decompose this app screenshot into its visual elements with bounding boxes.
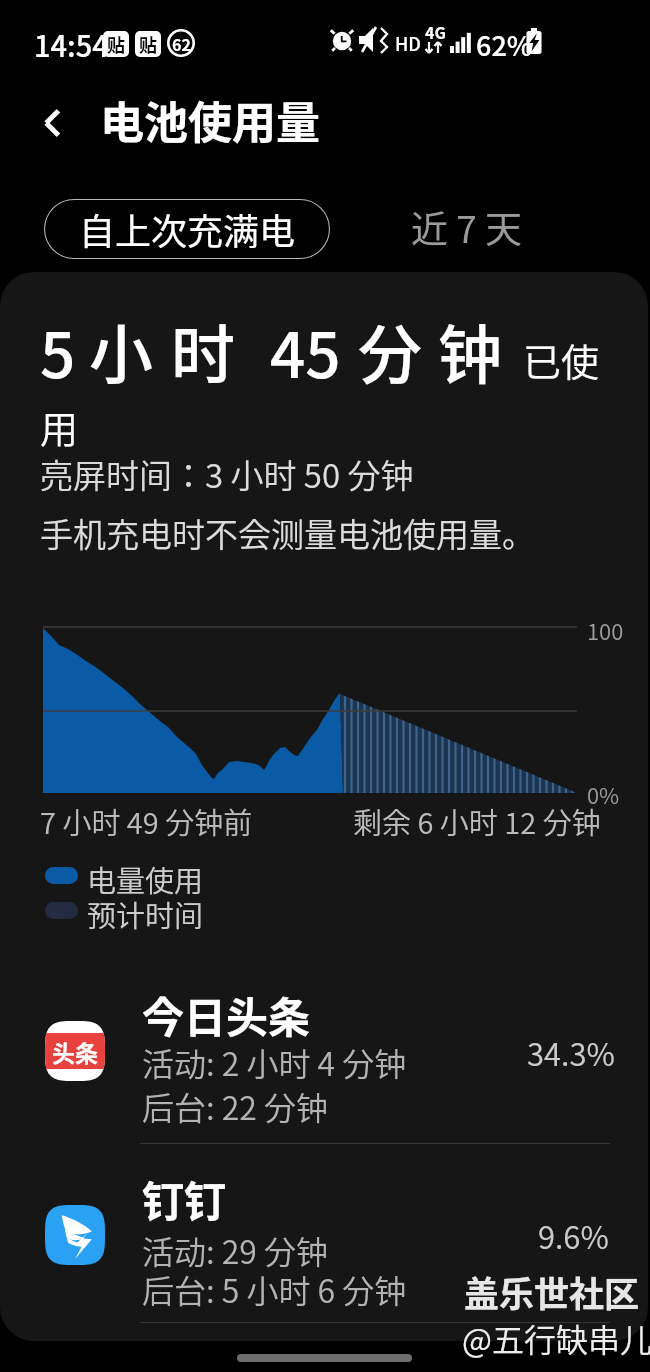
- staticText: 预计时间: [87, 893, 204, 935]
- staticText: 剩余 6 小时 12 分钟: [353, 800, 601, 842]
- staticText: 34.3%: [527, 1030, 615, 1075]
- staticText: 14:54: [34, 23, 109, 65]
- staticText: 亮屏时间：3 小时 50 分钟: [40, 450, 414, 498]
- staticText: 62%: [476, 25, 533, 64]
- staticText: 今日头条: [142, 984, 311, 1045]
- staticText: 4G: [425, 20, 446, 43]
- staticText: 贴: [107, 31, 125, 57]
- staticText: 手机充电时不会测量电池使用量。: [40, 509, 535, 557]
- staticText: 钉钉: [142, 1168, 227, 1229]
- staticText: 9.6%: [538, 1213, 609, 1258]
- staticText: 活动: 29 分钟: [142, 1227, 329, 1273]
- staticText: 小: [89, 304, 153, 397]
- staticText: 100: [587, 614, 624, 646]
- staticText: 已使: [523, 332, 600, 387]
- staticText: HD: [395, 30, 421, 56]
- staticText: 电量使用: [87, 858, 204, 900]
- staticText: @五行缺串儿: [462, 1315, 650, 1361]
- staticText: 时: [171, 304, 235, 397]
- staticText: 钟: [438, 304, 502, 397]
- staticText: 头条: [52, 1035, 98, 1068]
- button[interactable]: 自上次充满电: [44, 199, 330, 259]
- staticText: 7 小时 49 分钟前: [40, 800, 253, 842]
- button[interactable]: [0, 1155, 650, 1322]
- button[interactable]: 近 7 天: [400, 197, 534, 257]
- staticText: 电池使用量: [100, 88, 320, 152]
- staticText: 盖乐世社区: [464, 1266, 640, 1317]
- staticText: 近 7 天: [411, 200, 523, 254]
- staticText: 45: [270, 306, 341, 396]
- button[interactable]: [0, 975, 650, 1143]
- staticText: 62: [172, 32, 191, 55]
- staticText: 自上次充满电: [79, 203, 296, 255]
- staticText: 贴: [139, 31, 157, 57]
- staticText: 后台: 5 小时 6 分钟: [142, 1266, 407, 1312]
- button[interactable]: Back: [24, 94, 82, 152]
- staticText: 用: [40, 399, 79, 454]
- staticText: 活动: 2 小时 4 分钟: [142, 1039, 407, 1085]
- staticText: 0%: [587, 778, 620, 810]
- staticText: 分: [358, 304, 422, 397]
- staticText: 5: [40, 306, 76, 396]
- staticText: 后台: 22 分钟: [142, 1083, 329, 1129]
